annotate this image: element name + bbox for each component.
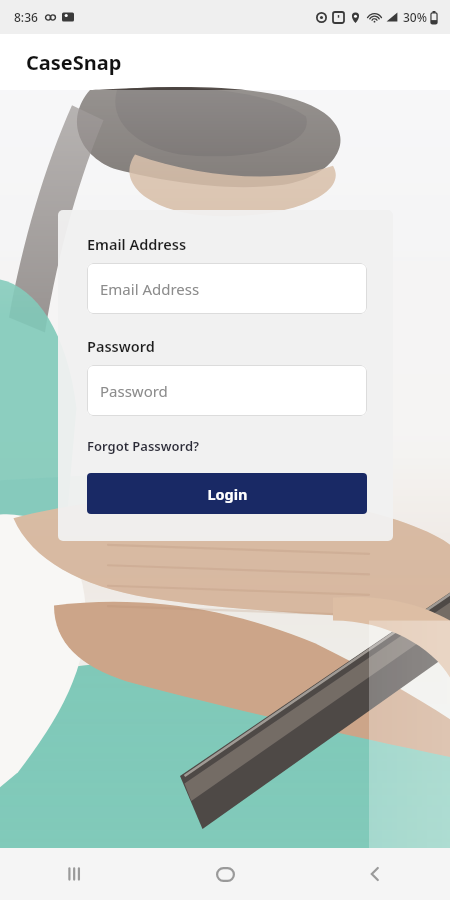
staticText: 8:36 — [14, 9, 38, 25]
button[interactable]: Back — [300, 848, 450, 900]
button[interactable]: Recents — [0, 848, 150, 900]
staticText: Email Address — [87, 234, 187, 254]
button[interactable]: Login — [87, 473, 367, 514]
staticText: Password — [87, 336, 155, 356]
staticText: Email Address — [100, 279, 200, 299]
staticText: Forgot Password? — [87, 437, 200, 455]
button[interactable]: Forgot Password? — [87, 435, 200, 457]
staticText: 30% — [403, 9, 427, 25]
button[interactable]: Password — [87, 365, 367, 416]
staticText: CaseSnap — [26, 49, 122, 76]
staticText: Password — [100, 381, 168, 401]
button[interactable]: Email Address — [87, 263, 367, 314]
staticText: Login — [207, 484, 248, 504]
button[interactable]: Home — [150, 848, 300, 900]
